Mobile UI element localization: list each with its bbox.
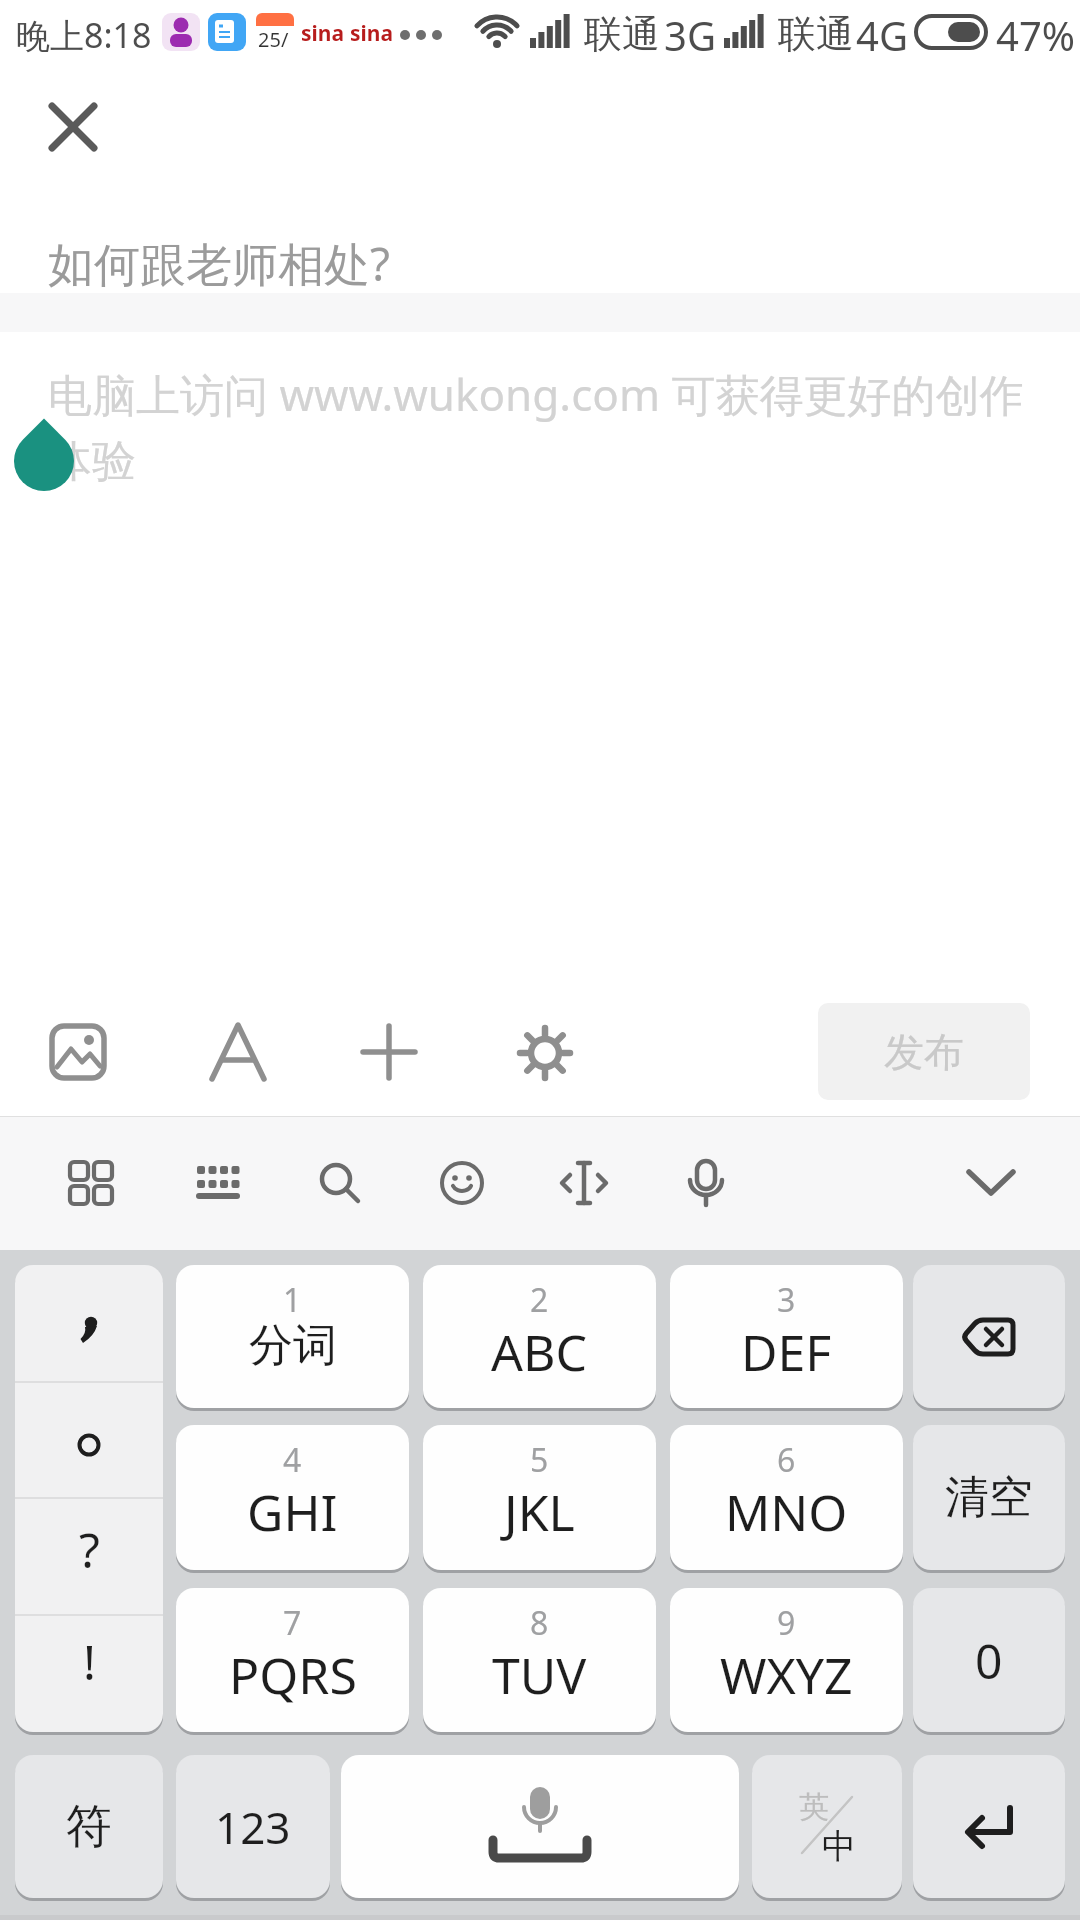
staticText: 4G <box>856 8 908 62</box>
staticText: WXYZ <box>720 1641 853 1709</box>
button[interactable]: 符 <box>15 1755 163 1898</box>
staticText: TUV <box>492 1641 587 1709</box>
button[interactable] <box>210 1022 268 1082</box>
button[interactable] <box>361 1024 417 1080</box>
staticText: ABC <box>491 1318 588 1386</box>
button[interactable] <box>48 102 98 152</box>
staticText: 电脑上访问 www.wukong.com 可获得更好的创作 <box>48 364 1024 424</box>
button[interactable]: 6 <box>670 1425 903 1570</box>
button[interactable]: 5 <box>423 1425 656 1570</box>
staticText: 8 <box>530 1601 549 1645</box>
button[interactable] <box>515 1023 575 1083</box>
button[interactable] <box>341 1755 739 1898</box>
staticText: PQRS <box>229 1641 357 1709</box>
button[interactable]: 7 <box>176 1588 409 1732</box>
staticText: sina <box>350 19 394 48</box>
staticText: 分词 <box>249 1318 337 1373</box>
staticText: 联通 <box>584 10 660 58</box>
staticText: 25/ <box>258 26 289 53</box>
button[interactable] <box>438 1159 486 1207</box>
staticText: MNO <box>725 1478 848 1546</box>
button[interactable] <box>682 1159 730 1207</box>
button[interactable] <box>913 1265 1065 1408</box>
button[interactable] <box>966 1169 1016 1199</box>
button[interactable]: 发布 <box>818 1003 1030 1100</box>
staticText: 5 <box>530 1438 549 1482</box>
button[interactable] <box>68 1160 114 1206</box>
staticText: 如何跟老师相处? <box>48 232 390 295</box>
button[interactable]: 4 <box>176 1425 409 1570</box>
button[interactable] <box>560 1159 608 1207</box>
staticText: 发布 <box>884 1027 964 1077</box>
button[interactable]: ? <box>15 1265 163 1732</box>
button[interactable]: 0 <box>913 1588 1065 1732</box>
staticText: sina <box>301 19 345 48</box>
staticText: 6 <box>777 1438 796 1482</box>
staticText: 晚上8:18 <box>16 12 152 58</box>
button[interactable]: 9 <box>670 1588 903 1732</box>
staticText: 2 <box>530 1278 549 1322</box>
button[interactable]: 1 <box>176 1265 409 1408</box>
staticText: 123 <box>215 1797 291 1857</box>
staticText: 47% <box>996 8 1075 62</box>
staticText: 体验 <box>48 434 136 489</box>
staticText: 9 <box>777 1601 796 1645</box>
staticText: 4 <box>283 1438 302 1482</box>
button[interactable]: 123 <box>176 1755 330 1898</box>
staticText: 1 <box>283 1278 302 1322</box>
staticText: ? <box>79 1517 100 1582</box>
staticText: GHI <box>247 1478 338 1546</box>
button[interactable]: 清空 <box>913 1425 1065 1570</box>
button[interactable]: 英 <box>752 1755 902 1898</box>
button[interactable] <box>196 1166 244 1204</box>
button[interactable]: 2 <box>423 1265 656 1408</box>
staticText: 联通 <box>778 10 854 58</box>
button[interactable]: 8 <box>423 1588 656 1732</box>
staticText: 清空 <box>945 1470 1033 1525</box>
staticText: DEF <box>741 1318 832 1386</box>
staticText: 英 <box>799 1788 829 1826</box>
staticText: 中 <box>822 1825 856 1868</box>
staticText: 7 <box>283 1601 302 1645</box>
staticText: ! <box>83 1629 96 1694</box>
button[interactable] <box>316 1159 364 1207</box>
button[interactable] <box>913 1755 1065 1898</box>
staticText: 0 <box>975 1628 1003 1693</box>
staticText: 3 <box>777 1278 796 1322</box>
button[interactable]: 3 <box>670 1265 903 1408</box>
staticText: 3G <box>664 8 716 62</box>
button[interactable] <box>49 1023 107 1081</box>
staticText: 符 <box>66 1798 112 1856</box>
staticText: JKL <box>504 1478 575 1546</box>
